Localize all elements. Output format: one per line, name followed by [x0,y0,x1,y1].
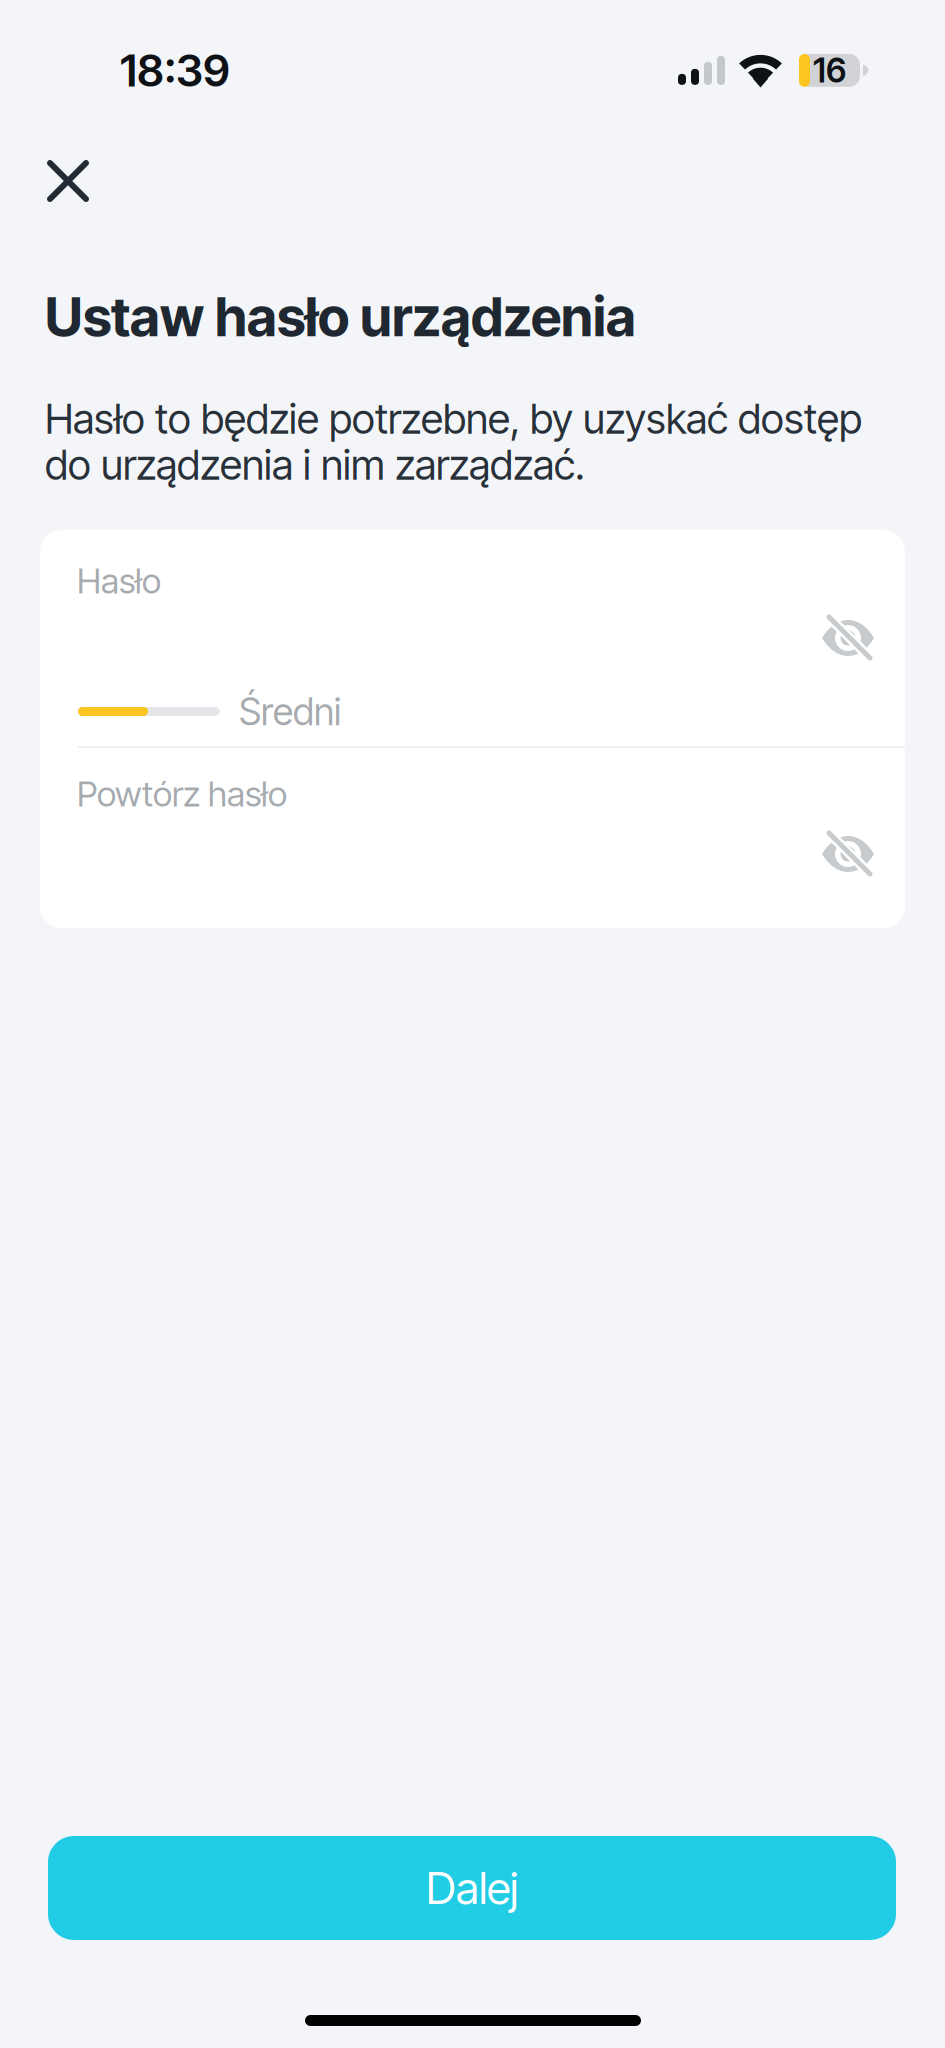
staticText: Średni [239,689,341,734]
staticText: Dalej [426,1861,518,1915]
button[interactable]: Show repeated password [799,817,897,891]
button[interactable]: Close [21,134,115,228]
staticText: Hasło to będzie potrzebne, by uzyskać do… [45,394,862,444]
staticText: 18:39 [120,44,230,97]
button[interactable]: Dalej [48,1836,896,1940]
staticText: do urządzenia i nim zarządzać. [45,440,585,490]
staticText: Powtórz hasło [77,773,287,815]
staticText: Hasło [77,560,161,602]
button[interactable]: Show password [799,601,897,675]
staticText: 16 [813,50,846,90]
staticText: Ustaw hasło urządzenia [45,284,636,349]
